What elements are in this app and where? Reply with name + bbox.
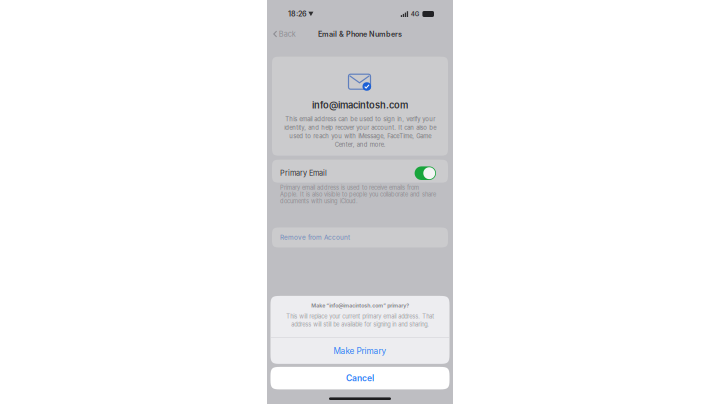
staticText: 4G [411,10,420,18]
staticText: Make Primary [333,346,386,356]
staticText: Remove from Account [280,234,350,241]
staticText: Primary Email [280,169,327,178]
staticText: Back [279,30,296,38]
staticText: Email & Phone Numbers [318,30,402,38]
button[interactable]: Back [267,27,301,41]
staticText: This will replace your current primary e… [286,313,434,328]
staticText: 18:26 [288,10,307,18]
staticText: info@imacintosh.com [312,100,408,111]
staticText: Primary email address is used to receive… [280,184,436,204]
button[interactable]: Make Primary [270,338,449,364]
button[interactable]: Remove from Account [272,227,448,247]
staticText: Make “info@imacintosh.com” primary? [311,302,409,309]
staticText: Cancel [346,373,374,383]
staticText: This email address can be used to sign i… [284,116,436,148]
button[interactable]: Primary Email [272,160,448,183]
button[interactable]: Cancel [270,367,449,389]
